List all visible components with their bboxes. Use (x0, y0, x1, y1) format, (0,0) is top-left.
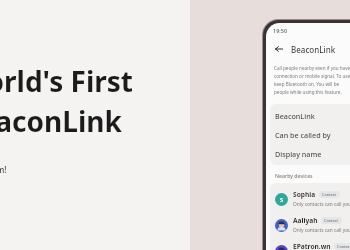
staticText: BeaconLink (291, 44, 336, 55)
staticText: Can be called by (275, 130, 331, 140)
staticText: 19:50 (273, 27, 288, 34)
button[interactable]: S (270, 186, 350, 212)
staticText: Sophia (293, 190, 316, 199)
button[interactable]: Back (272, 42, 286, 56)
staticText: people while using this feature. (274, 89, 342, 95)
staticText: S (280, 196, 284, 204)
button[interactable]: Can be called by (270, 125, 350, 144)
staticText: keep Bluetooth on. You will be discovera… (274, 81, 350, 87)
staticText: Call people nearby even if you have no i… (274, 65, 350, 71)
staticText: no problem! (0, 164, 7, 175)
staticText: connection or mobile signal. To use this… (274, 73, 350, 79)
button[interactable]: EPatron.wn (270, 238, 350, 250)
staticText: BeaconLink (275, 111, 315, 121)
staticText: Contact (322, 192, 337, 197)
button[interactable]: Aaliyah (270, 212, 350, 238)
staticText: Aaliyah (293, 216, 318, 225)
staticText: Only contacts can call you (293, 227, 350, 234)
staticText: World's First (0, 62, 133, 100)
staticText: Display name (275, 149, 322, 159)
staticText: Contact (324, 218, 339, 223)
staticText: Only contacts can call you (293, 201, 350, 208)
staticText: BeaconLink (0, 102, 122, 140)
staticText: EPatron.wn (293, 242, 331, 250)
staticText: Contact (337, 244, 350, 249)
button[interactable]: BeaconLink (270, 106, 350, 125)
staticText: Nearby devices (275, 172, 313, 179)
button[interactable]: Display name (270, 144, 350, 163)
